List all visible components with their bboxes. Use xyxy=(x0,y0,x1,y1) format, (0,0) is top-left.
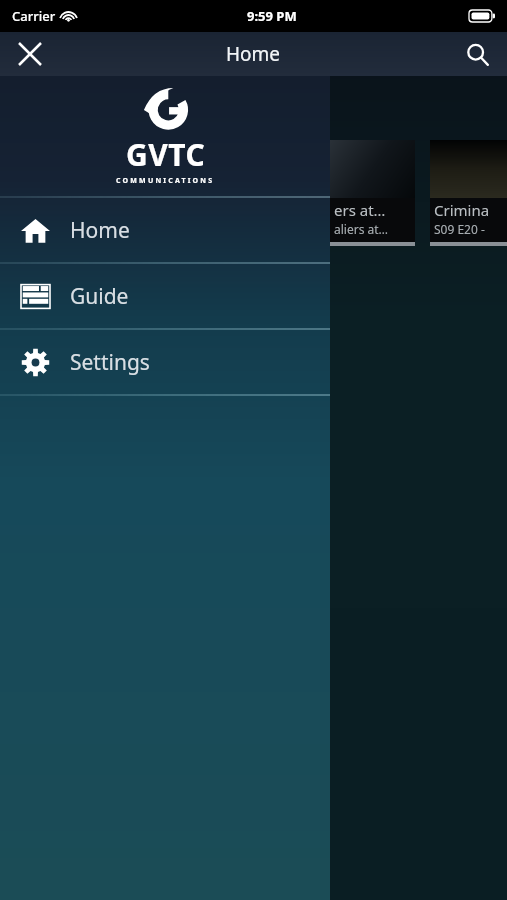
staticText: ers at… xyxy=(334,200,386,220)
staticText: Guide xyxy=(70,282,129,311)
staticText: aliers at… xyxy=(334,221,389,237)
staticText: Crimina xyxy=(434,200,490,220)
staticText: Settings xyxy=(70,348,150,377)
staticText: Home xyxy=(226,41,281,67)
button[interactable]: Close xyxy=(8,32,52,76)
button[interactable]: Home xyxy=(0,198,330,262)
button[interactable]: Settings xyxy=(0,330,330,394)
button[interactable]: ers at… xyxy=(330,140,415,246)
button[interactable]: Guide xyxy=(0,264,330,328)
staticText: COMMUNICATIONS xyxy=(116,176,215,186)
staticText: S09 E20 - xyxy=(434,221,488,237)
button[interactable]: Search xyxy=(455,32,499,76)
staticText: Carrier xyxy=(12,7,56,25)
button[interactable]: Crimina xyxy=(430,140,507,246)
staticText: GVTC xyxy=(126,134,206,175)
staticText: 9:59 PM xyxy=(247,7,297,25)
staticText: Home xyxy=(70,216,130,245)
